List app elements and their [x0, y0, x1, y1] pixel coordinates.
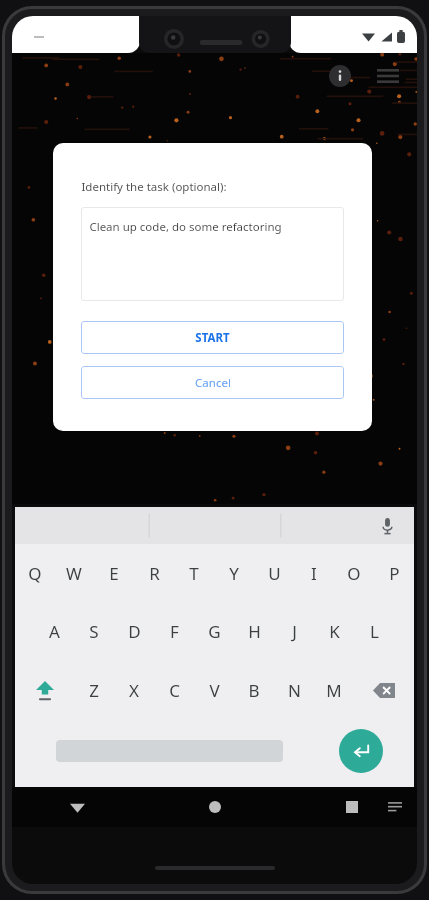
button[interactable]: Clean up code, do some refactoring — [81, 207, 344, 301]
button[interactable]: START — [186, 365, 244, 384]
button[interactable]: R — [134, 544, 174, 602]
staticText: H — [248, 620, 261, 643]
button[interactable]: T — [174, 544, 214, 602]
button[interactable]: Home — [198, 790, 232, 824]
staticText: W — [66, 562, 82, 585]
button[interactable]: Voice input — [374, 513, 400, 539]
button[interactable]: C — [154, 661, 194, 720]
staticText: F — [170, 620, 179, 643]
button[interactable]: B — [234, 661, 274, 720]
button[interactable]: Shift — [15, 661, 74, 720]
staticText: S — [89, 620, 99, 643]
button[interactable]: S — [74, 602, 114, 661]
button[interactable]: Cancel — [81, 366, 344, 399]
button[interactable]: N — [274, 661, 314, 720]
button[interactable]: O — [334, 544, 374, 602]
staticText: N — [288, 679, 301, 702]
button[interactable]: H — [234, 602, 274, 661]
staticText: O — [347, 562, 361, 585]
staticText: T — [189, 562, 199, 585]
button[interactable]: Enter — [320, 720, 401, 781]
button[interactable]: START — [81, 321, 344, 354]
button[interactable]: Menu — [373, 61, 403, 91]
button[interactable]: X — [114, 661, 154, 720]
button[interactable]: D — [114, 602, 154, 661]
staticText: C — [169, 679, 180, 702]
staticText: X — [129, 679, 139, 702]
staticText: Q — [28, 562, 42, 585]
button[interactable]: L — [354, 602, 394, 661]
staticText: V — [209, 679, 220, 702]
button[interactable]: Backspace — [354, 661, 414, 720]
button[interactable]: K — [314, 602, 354, 661]
button[interactable]: W — [54, 544, 94, 602]
button[interactable]: J — [274, 602, 314, 661]
button[interactable]: Z — [74, 661, 114, 720]
button[interactable]: U — [254, 544, 294, 602]
staticText: I — [311, 562, 317, 585]
button[interactable]: Q — [15, 544, 54, 602]
staticText: G — [208, 620, 221, 643]
staticText: START — [195, 330, 230, 346]
staticText: D — [128, 620, 141, 643]
staticText: A — [49, 620, 60, 643]
button[interactable]: Keyboard switcher — [385, 797, 405, 817]
button[interactable]: P — [374, 544, 414, 602]
staticText: J — [292, 620, 297, 643]
button[interactable]: Y — [214, 544, 254, 602]
button[interactable]: F — [154, 602, 194, 661]
button[interactable]: I — [294, 544, 334, 602]
button[interactable]: V — [194, 661, 234, 720]
button[interactable]: G — [194, 602, 234, 661]
button[interactable]: Back — [60, 790, 94, 824]
staticText: Z — [89, 679, 99, 702]
staticText: E — [109, 562, 119, 585]
staticText: M — [326, 679, 342, 702]
button[interactable]: A — [34, 602, 74, 661]
staticText: P — [389, 562, 400, 585]
button[interactable]: M — [314, 661, 354, 720]
staticText: R — [149, 562, 160, 585]
staticText: U — [268, 562, 281, 585]
button[interactable]: Recents — [335, 790, 369, 824]
button[interactable]: E — [94, 544, 134, 602]
staticText: K — [329, 620, 340, 643]
staticText: L — [370, 620, 379, 643]
staticText: Y — [229, 562, 239, 585]
staticText: Cancel — [195, 375, 231, 391]
staticText: B — [248, 679, 260, 702]
button[interactable]: Info — [325, 61, 355, 91]
staticText: START — [203, 365, 244, 384]
staticText: Clean up code, do some refactoring — [89, 219, 282, 235]
staticText: Identify the task (optional): — [81, 179, 227, 195]
